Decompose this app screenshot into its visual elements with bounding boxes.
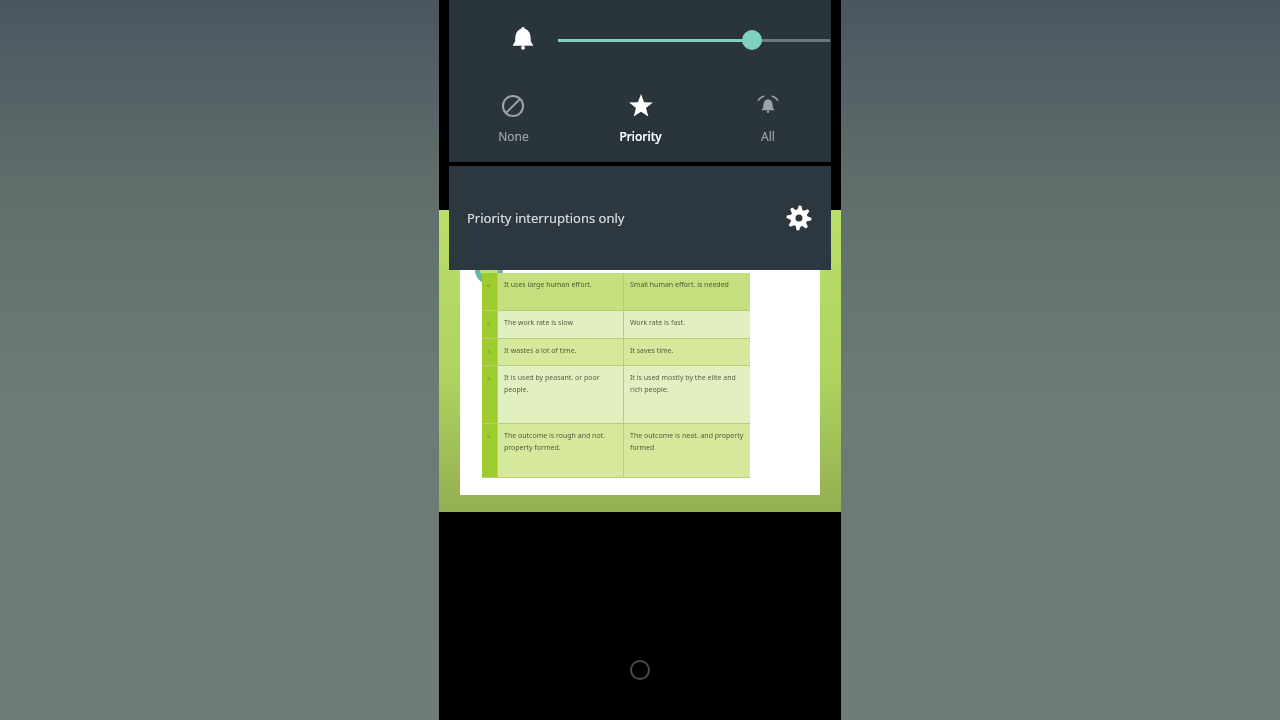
button[interactable]: Priority [577,88,704,160]
button[interactable] [558,25,830,55]
button[interactable]: Priority interruptions only [449,166,831,270]
staticText: a. [487,348,492,355]
staticText: It wastes a lot of time. [504,346,577,356]
staticText: a. [487,433,492,440]
staticText: All [761,128,775,144]
button[interactable]: Do not disturb settings [776,195,822,241]
staticText: a. [487,282,492,289]
staticText: It saves time. [630,346,674,356]
staticText: a. [487,375,492,382]
staticText: It is used by peasant. or poor people. [504,373,619,394]
staticText: Priority interruptions only [467,209,625,227]
staticText: The outcome is rough and not. property f… [504,431,619,452]
staticText: Work rate is fast. [630,318,686,328]
staticText: It is used mostly by the elite and rich … [630,373,746,394]
staticText: None [498,128,529,144]
button[interactable]: All [704,88,831,160]
staticText: It uses large human effort. [504,280,592,290]
staticText: The outcome is neat. and property formed [630,431,746,452]
staticText: Small human effort. is needed [630,280,729,290]
button[interactable]: Home [620,650,660,690]
button[interactable]: Ringer volume [501,18,545,62]
staticText: Priority [619,128,662,144]
button[interactable]: None [449,88,577,160]
staticText: a. [487,320,492,327]
staticText: The work rate is slow [504,318,573,328]
